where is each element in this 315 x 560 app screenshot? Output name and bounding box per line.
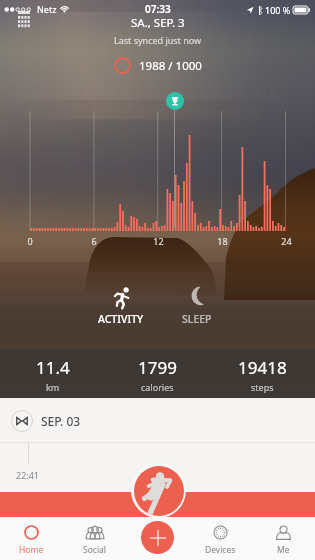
- button[interactable]: Devices: [189, 517, 252, 560]
- staticText: SEP. 03: [41, 413, 81, 429]
- button[interactable]: SEP. 03: [11, 398, 315, 443]
- button[interactable]: ACTIVITY: [83, 286, 158, 326]
- button[interactable]: Running activity: [131, 463, 186, 518]
- button[interactable]: 1799: [105, 356, 210, 393]
- button[interactable]: Me: [252, 517, 315, 560]
- button[interactable]: 11.4: [0, 356, 105, 393]
- staticText: 12: [153, 235, 164, 247]
- staticText: 11.4: [36, 356, 70, 379]
- staticText: 100 %: [265, 4, 291, 16]
- button[interactable]: Add activity: [141, 521, 174, 554]
- staticText: 1988 / 1000: [139, 58, 202, 74]
- staticText: 0: [27, 235, 33, 247]
- staticText: Home: [19, 544, 44, 556]
- staticText: Last synced just now: [114, 34, 202, 46]
- button[interactable]: SLEEP: [159, 286, 234, 326]
- button[interactable]: 19418: [210, 356, 315, 393]
- staticText: Devices: [205, 544, 236, 556]
- staticText: SLEEP: [182, 312, 212, 326]
- staticText: 22:41: [16, 469, 40, 481]
- staticText: 18: [217, 235, 228, 247]
- staticText: 1799: [138, 356, 177, 379]
- staticText: 24: [281, 235, 292, 247]
- button[interactable]: Social: [63, 517, 126, 560]
- staticText: ACTIVITY: [98, 312, 144, 326]
- staticText: Social: [83, 544, 107, 556]
- staticText: Netz: [37, 3, 57, 15]
- staticText: Me: [277, 544, 290, 556]
- staticText: km: [46, 381, 60, 393]
- staticText: calories: [141, 381, 174, 393]
- staticText: SA., SEP. 3: [131, 15, 185, 31]
- staticText: 6: [91, 235, 97, 247]
- staticText: steps: [251, 381, 274, 393]
- button[interactable]: Home: [0, 517, 63, 560]
- staticText: 07:33: [145, 2, 171, 16]
- staticText: 19418: [238, 356, 287, 379]
